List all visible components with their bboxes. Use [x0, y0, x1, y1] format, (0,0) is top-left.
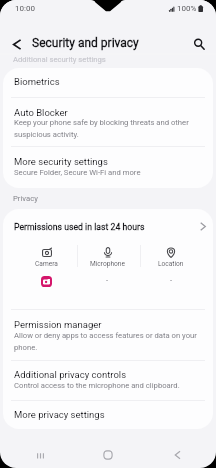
staticText: More privacy settings	[14, 409, 105, 420]
staticText: Keep your phone safe by blocking threats…	[14, 118, 189, 139]
button[interactable]	[3, 146, 213, 188]
staticText: -	[106, 276, 109, 285]
other: Open permission usage	[196, 219, 210, 233]
staticText: Additional security settings	[13, 55, 106, 64]
button[interactable]: Recent apps	[11, 442, 69, 468]
button[interactable]: Home	[79, 442, 137, 468]
staticText: Control access to the microphone and cli…	[14, 381, 180, 390]
staticText: Security and privacy	[32, 36, 139, 50]
staticText: More security settings	[14, 156, 108, 167]
button[interactable]	[3, 68, 213, 97]
button[interactable]: Location	[140, 246, 202, 308]
button[interactable]: Back	[148, 442, 206, 468]
button[interactable]: Microphone	[76, 246, 138, 308]
staticText: 10:00	[15, 4, 35, 13]
button[interactable]: Camera	[15, 246, 77, 308]
staticText: Location	[158, 260, 184, 268]
staticText: Microphone	[90, 260, 125, 268]
staticText: Auto Blocker	[14, 107, 68, 118]
staticText: Allow or deny apps to access features or…	[14, 331, 197, 352]
staticText: 100%	[177, 4, 197, 13]
button[interactable]	[3, 209, 213, 241]
button[interactable]	[3, 97, 213, 146]
staticText: -	[170, 276, 173, 285]
button[interactable]	[3, 400, 213, 429]
button[interactable]: Navigate up	[7, 32, 26, 56]
staticText: Camera	[35, 260, 58, 268]
staticText: Privacy	[13, 194, 38, 203]
button[interactable]	[3, 309, 213, 360]
staticText: Secure Folder, Secure Wi-Fi and more	[14, 168, 141, 177]
staticText: Biometrics	[14, 76, 60, 87]
staticText: Additional privacy controls	[14, 369, 127, 380]
staticText: Permissions used in last 24 hours	[14, 222, 145, 232]
staticText: Permission manager	[14, 319, 102, 330]
button[interactable]	[3, 360, 213, 400]
button[interactable]: Search	[187, 32, 211, 56]
